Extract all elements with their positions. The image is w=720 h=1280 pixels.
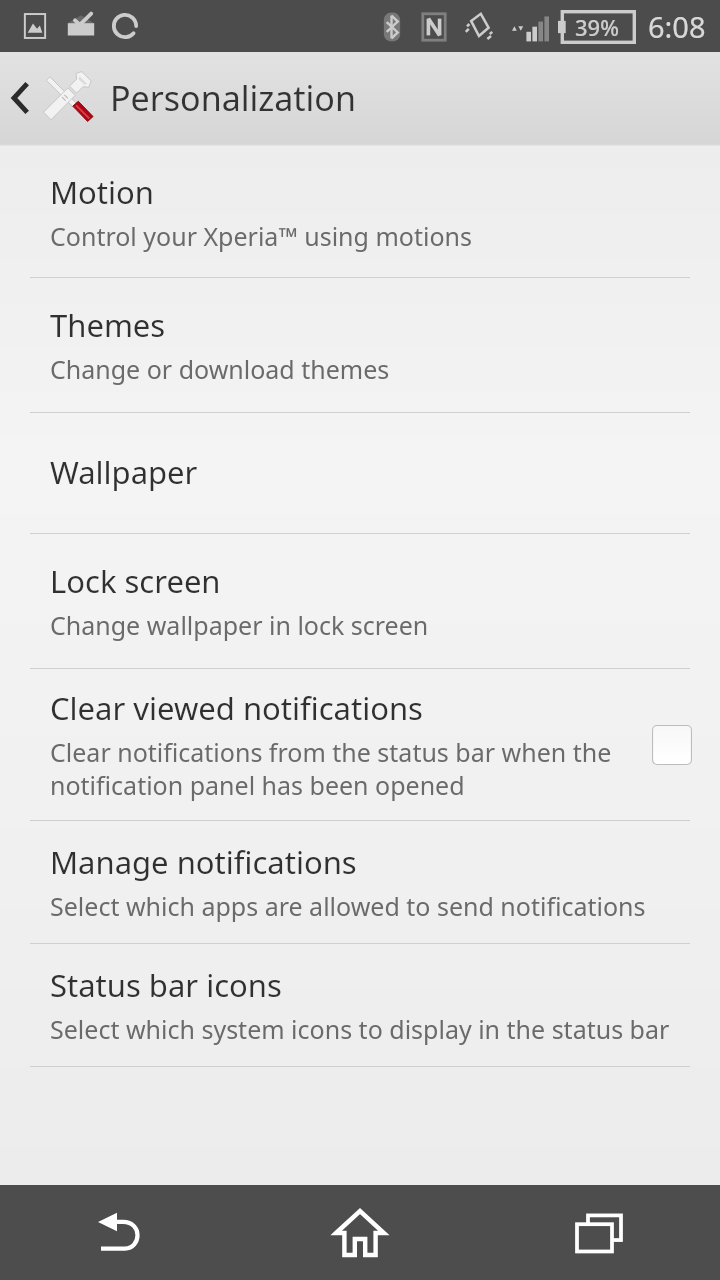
button[interactable]: Wallpaper: [0, 413, 720, 533]
button[interactable]: Lock screen: [0, 534, 720, 668]
staticText: 39%: [575, 12, 619, 42]
button[interactable]: Home: [240, 1185, 480, 1280]
button[interactable]: Clear viewed notifications: [0, 669, 720, 820]
button[interactable]: Status bar icons: [0, 944, 720, 1066]
button[interactable]: Manage notifications: [0, 821, 720, 943]
staticText: Control your Xperia™ using motions: [50, 219, 472, 253]
staticText: Status bar icons: [50, 964, 282, 1006]
staticText: Lock screen: [50, 560, 221, 602]
button[interactable]: Clear viewed notifications checkbox: [650, 723, 694, 767]
button[interactable]: Themes: [0, 278, 720, 412]
button[interactable]: Back: [0, 63, 364, 133]
staticText: Change wallpaper in lock screen: [50, 608, 429, 642]
staticText: Motion: [50, 171, 154, 213]
staticText: Clear viewed notifications: [50, 687, 423, 729]
button[interactable]: Motion: [0, 147, 720, 277]
staticText: Manage notifications: [50, 841, 357, 883]
staticText: Wallpaper: [50, 451, 198, 493]
button[interactable]: Recent apps: [480, 1185, 720, 1280]
staticText: Select which apps are allowed to send no…: [50, 889, 646, 923]
staticText: Change or download themes: [50, 352, 390, 386]
staticText: Select which system icons to display in …: [50, 1012, 670, 1046]
staticText: Clear notifications from the status bar …: [50, 735, 632, 802]
staticText: Themes: [50, 304, 166, 346]
staticText: 6:08: [648, 7, 706, 46]
staticText: Personalization: [110, 75, 356, 121]
button[interactable]: Back: [0, 1185, 240, 1280]
